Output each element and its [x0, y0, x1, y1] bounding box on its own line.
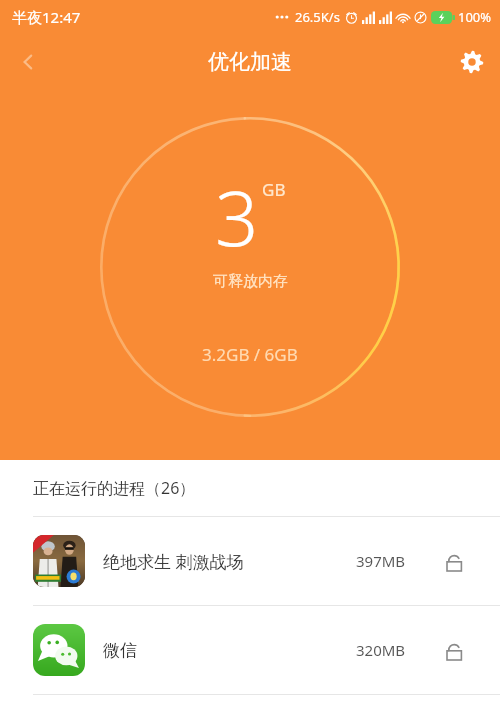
staticText: 绝地求生 刺激战场 [103, 550, 244, 573]
staticText: 100% [458, 8, 492, 26]
staticText: 320MB [356, 640, 406, 660]
staticText: 可释放内存 [213, 272, 288, 291]
staticText: 3.2GB / 6GB [202, 343, 298, 366]
button[interactable]: 微信 [0, 606, 500, 694]
staticText: GB [262, 178, 286, 201]
staticText: 正在运行的进程（26） [33, 477, 196, 499]
button[interactable]: Settings [444, 34, 500, 90]
staticText: 微信 [103, 640, 137, 661]
button[interactable]: Unlock 微信 [440, 633, 474, 667]
staticText: 397MB [356, 551, 406, 571]
staticText: 3 [215, 165, 259, 269]
staticText: 半夜12:47 [12, 7, 81, 27]
staticText: 优化加速 [208, 49, 292, 75]
button[interactable]: 绝地求生 刺激战场 [0, 517, 500, 605]
staticText: 26.5K/s [295, 8, 340, 26]
button[interactable]: Unlock 绝地求生 刺激战场 [440, 544, 474, 578]
button[interactable]: Back [0, 34, 56, 90]
